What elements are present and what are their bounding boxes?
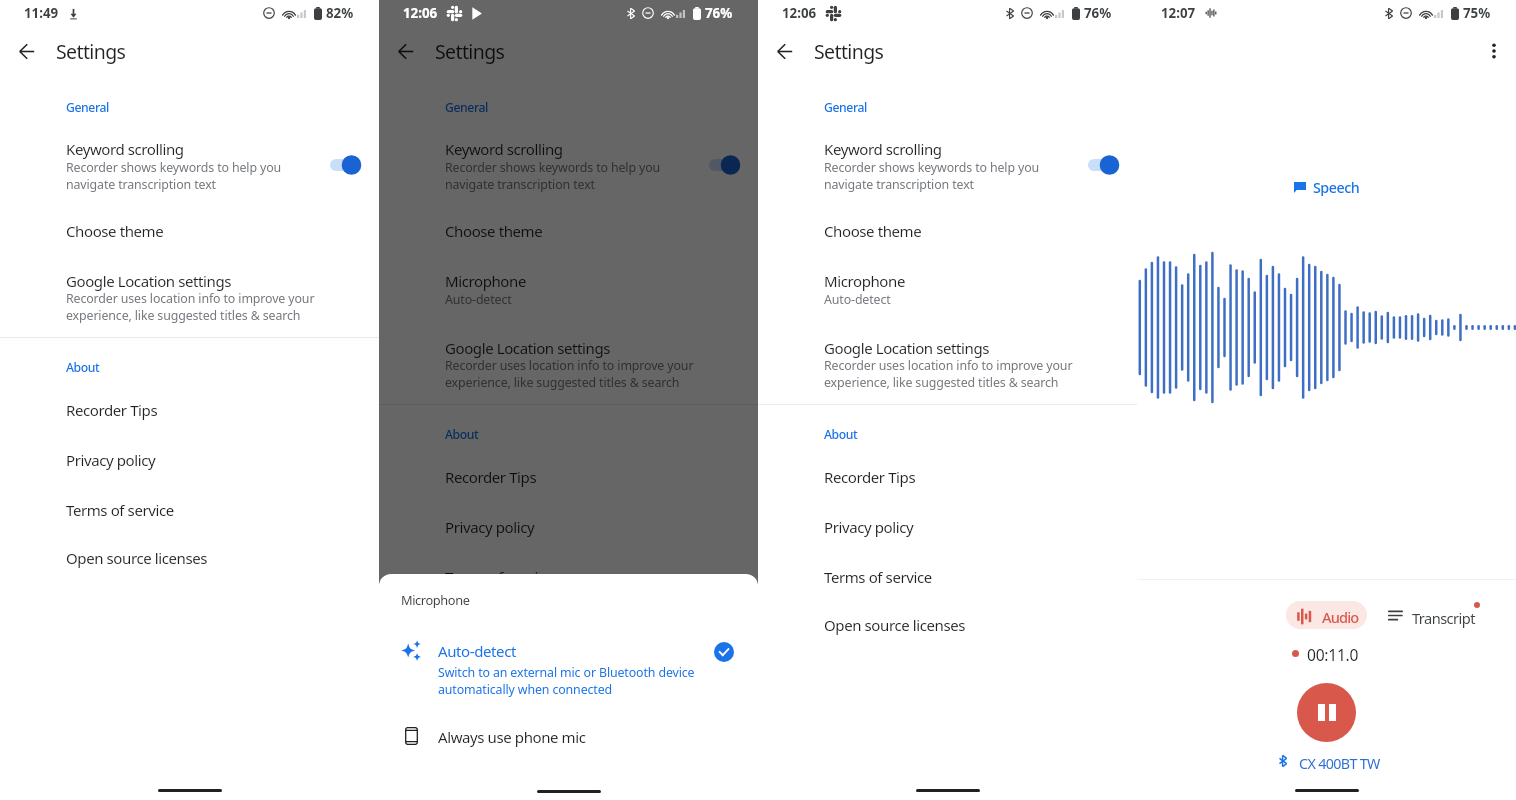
button[interactable] — [379, 462, 758, 494]
button[interactable] — [379, 719, 758, 755]
button[interactable] — [0, 216, 379, 248]
staticText: Microphone — [401, 591, 470, 608]
button[interactable] — [758, 610, 1137, 642]
button[interactable] — [758, 134, 1137, 194]
staticText: Auto-detect — [445, 291, 512, 308]
staticText: About — [445, 426, 479, 443]
staticText: Choose theme — [824, 221, 922, 241]
staticText: 82% — [326, 4, 354, 22]
staticText: Recorder uses location info to improve y… — [824, 357, 1073, 390]
staticText: Privacy policy — [445, 517, 535, 537]
button[interactable] — [758, 462, 1137, 494]
staticText: Keyword scrolling — [445, 139, 563, 159]
button[interactable] — [0, 266, 379, 326]
staticText: Keyword scrolling — [824, 139, 942, 159]
staticText: CX 400BT TW — [1299, 754, 1380, 773]
staticText: Recorder shows keywords to help you navi… — [66, 159, 282, 192]
button[interactable] — [379, 632, 758, 690]
staticText: 76% — [705, 4, 733, 22]
staticText: Recorder Tips — [66, 400, 158, 420]
staticText: General — [824, 99, 867, 116]
button[interactable]: Back — [768, 34, 802, 68]
staticText: Keyword scrolling — [66, 139, 184, 159]
staticText: Recorder Tips — [445, 467, 537, 487]
staticText: General — [66, 99, 109, 116]
button[interactable] — [758, 216, 1137, 248]
staticText: About — [66, 359, 100, 376]
staticText: Terms of service — [445, 567, 553, 587]
staticText: Terms of service — [824, 567, 932, 587]
button[interactable] — [0, 395, 379, 427]
staticText: 12:06 — [782, 4, 817, 22]
staticText: Open source licenses — [824, 615, 966, 635]
staticText: 12:07 — [1161, 4, 1196, 22]
staticText: Always use phone mic — [438, 727, 586, 747]
button[interactable] — [379, 134, 758, 194]
staticText: Recorder uses location info to improve y… — [445, 357, 694, 390]
staticText: Google Location settings — [445, 338, 611, 358]
staticText: Privacy policy — [824, 517, 914, 537]
staticText: General — [445, 99, 488, 116]
button[interactable] — [758, 512, 1137, 544]
staticText: Microphone — [824, 271, 905, 291]
staticText: Auto-detect — [438, 641, 516, 661]
staticText: Settings — [814, 38, 884, 65]
staticText: 12:06 — [403, 4, 438, 22]
staticText: Choose theme — [66, 221, 164, 241]
staticText: Recorder shows keywords to help you navi… — [445, 159, 661, 192]
staticText: Audio — [1322, 607, 1359, 627]
staticText: Speech — [1313, 178, 1360, 197]
button[interactable] — [758, 333, 1137, 393]
staticText: Auto-detect — [824, 291, 891, 308]
button[interactable]: More options — [1477, 34, 1511, 68]
staticText: Google Location settings — [66, 271, 232, 291]
button[interactable] — [379, 512, 758, 544]
staticText: Open source licenses — [66, 548, 208, 568]
staticText: Recorder Tips — [824, 467, 916, 487]
staticText: Microphone — [445, 271, 526, 291]
staticText: Google Location settings — [824, 338, 990, 358]
staticText: Transcript — [1412, 608, 1475, 628]
staticText: About — [824, 426, 858, 443]
button[interactable] — [758, 266, 1137, 312]
staticText: 11:49 — [24, 4, 59, 22]
staticText: Privacy policy — [66, 450, 156, 470]
button[interactable]: Pause recording — [1297, 683, 1356, 742]
button[interactable]: Back — [389, 34, 423, 68]
staticText: Settings — [435, 38, 505, 65]
button[interactable] — [1286, 601, 1367, 629]
staticText: Choose theme — [445, 221, 543, 241]
button[interactable] — [379, 333, 758, 393]
button[interactable] — [1384, 601, 1470, 629]
staticText: 76% — [705, 4, 733, 22]
button[interactable] — [379, 562, 758, 594]
button[interactable] — [0, 134, 379, 194]
staticText: Switch to an external mic or Bluetooth d… — [438, 664, 695, 697]
staticText: Recorder uses location info to improve y… — [66, 290, 315, 323]
staticText: 75% — [1463, 4, 1491, 22]
staticText: Recorder shows keywords to help you navi… — [824, 159, 1040, 192]
button[interactable] — [379, 266, 758, 312]
button[interactable] — [758, 562, 1137, 594]
button[interactable] — [0, 495, 379, 527]
button[interactable] — [379, 216, 758, 248]
staticText: 76% — [1084, 4, 1112, 22]
staticText: 12:06 — [403, 4, 438, 22]
button[interactable] — [0, 445, 379, 477]
staticText: 00:11.0 — [1307, 644, 1359, 665]
staticText: Settings — [56, 38, 126, 65]
button[interactable] — [0, 543, 379, 575]
staticText: Terms of service — [66, 500, 174, 520]
button[interactable]: Back — [10, 34, 44, 68]
